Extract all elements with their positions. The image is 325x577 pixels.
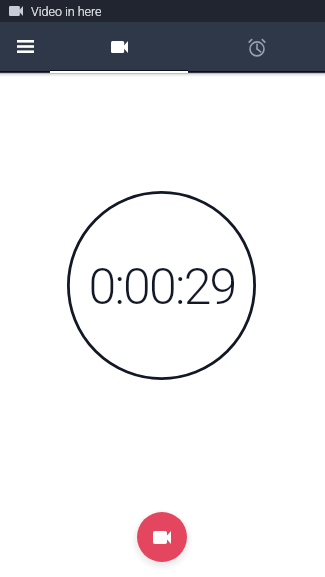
button[interactable]: Alarm tab [188, 22, 325, 71]
button[interactable]: Start video recording [137, 512, 187, 562]
staticText: 0:00:29 [88, 258, 236, 317]
button[interactable]: Open navigation menu [0, 22, 50, 71]
staticText: Video in here [31, 4, 102, 19]
button[interactable]: Video tab, selected [50, 22, 188, 71]
